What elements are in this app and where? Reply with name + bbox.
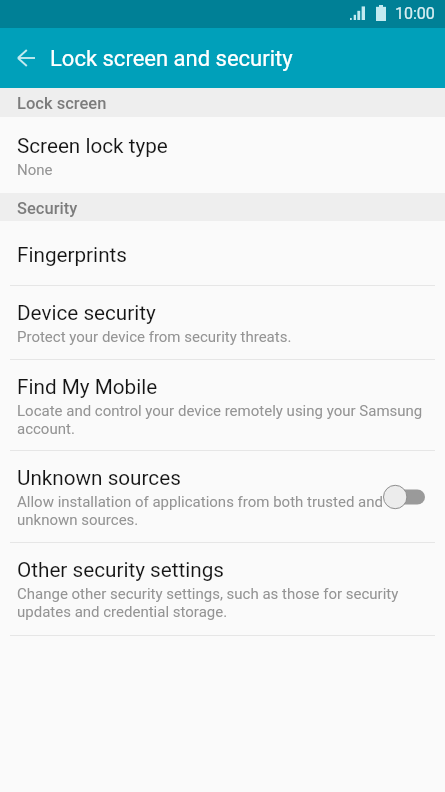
staticText: Device security	[17, 301, 156, 325]
staticText: Security	[17, 199, 78, 218]
staticText: Find My Mobile	[17, 375, 158, 399]
staticText: Change other security settings, such as …	[17, 585, 427, 621]
button[interactable]: Navigate up	[0, 28, 50, 88]
staticText: None	[17, 161, 53, 179]
staticText: Protect your device from security threat…	[17, 328, 292, 346]
staticText: Screen lock type	[17, 134, 168, 158]
button[interactable]: Other security settings	[0, 543, 445, 635]
button[interactable]: Fingerprints	[0, 221, 445, 285]
staticText: Fingerprints	[17, 243, 128, 267]
button[interactable]: Unknown sources	[0, 451, 445, 542]
staticText: Unknown sources	[17, 466, 181, 490]
button[interactable]: Unknown sources toggle	[383, 485, 425, 509]
staticText: 10:00	[395, 4, 435, 23]
staticText: Other security settings	[17, 558, 225, 582]
staticText: Lock screen	[17, 94, 107, 113]
staticText: Locate and control your device remotely …	[17, 402, 427, 438]
button[interactable]: Find My Mobile	[0, 360, 445, 450]
staticText: Lock screen and security	[50, 46, 293, 72]
staticText: Allow installation of applications from …	[17, 493, 385, 529]
button[interactable]: Device security	[0, 286, 445, 359]
button[interactable]: Screen lock type	[0, 117, 445, 193]
